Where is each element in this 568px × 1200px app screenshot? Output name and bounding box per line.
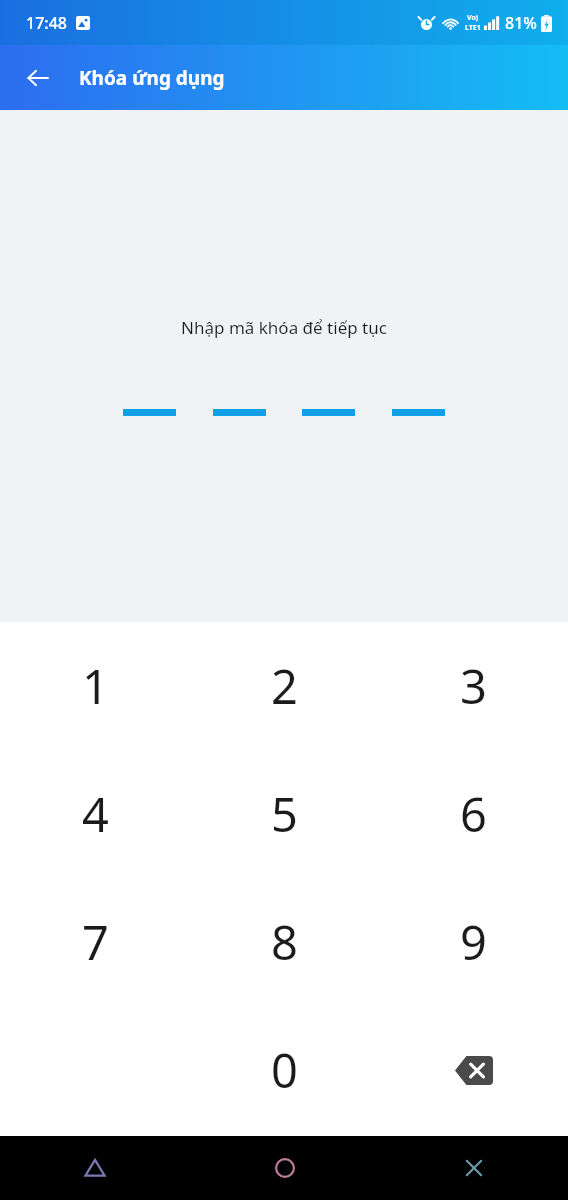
staticText: 6 bbox=[460, 782, 487, 846]
staticText: 3 bbox=[460, 654, 487, 718]
staticText: 5 bbox=[271, 782, 298, 846]
button[interactable]: 6 bbox=[379, 750, 568, 878]
staticText: 7 bbox=[82, 910, 109, 974]
button[interactable]: 8 bbox=[190, 878, 379, 1006]
button[interactable]: Home bbox=[190, 1136, 379, 1200]
button[interactable]: 3 bbox=[379, 622, 568, 750]
staticText: 81% bbox=[505, 12, 537, 34]
button[interactable]: 1 bbox=[0, 622, 190, 750]
staticText: 0 bbox=[271, 1038, 298, 1102]
staticText: 9 bbox=[460, 910, 487, 974]
button[interactable]: Backspace bbox=[379, 1006, 568, 1134]
button[interactable]: Back bbox=[12, 52, 64, 104]
staticText: 2 bbox=[271, 654, 298, 718]
staticText: Vo) bbox=[467, 13, 479, 23]
button[interactable]: 4 bbox=[0, 750, 190, 878]
button[interactable]: 9 bbox=[379, 878, 568, 1006]
staticText: 4 bbox=[82, 782, 109, 846]
button[interactable]: 5 bbox=[190, 750, 379, 878]
button[interactable]: 0 bbox=[190, 1006, 379, 1134]
staticText: Khóa ứng dụng bbox=[79, 65, 225, 91]
button[interactable]: Recent apps bbox=[379, 1136, 568, 1200]
button[interactable]: Back bbox=[0, 1136, 190, 1200]
staticText: Nhập mã khóa để tiếp tục bbox=[181, 316, 387, 339]
button[interactable]: 2 bbox=[190, 622, 379, 750]
staticText: 17:48 bbox=[26, 12, 67, 34]
staticText: 1 bbox=[82, 654, 109, 718]
button[interactable]: 7 bbox=[0, 878, 190, 1006]
staticText: LTE1 bbox=[465, 23, 481, 33]
staticText: 8 bbox=[271, 910, 298, 974]
